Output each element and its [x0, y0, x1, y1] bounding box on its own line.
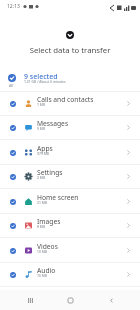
button[interactable]: Home screen — [0, 189, 140, 214]
staticText: 10 MB — [37, 249, 48, 254]
button[interactable]: Settings — [0, 164, 140, 189]
button[interactable]: Images — [0, 213, 140, 238]
button[interactable]: Back — [100, 290, 122, 310]
staticText: Calls and contacts — [37, 95, 94, 104]
staticText: 1.21 GB / About 4 minutes — [24, 79, 66, 84]
staticText: Home screen — [37, 193, 79, 202]
staticText: 12:13 — [7, 3, 20, 10]
staticText: Videos — [37, 242, 58, 251]
staticText: 979 MB — [37, 151, 49, 156]
staticText: Messages — [37, 119, 69, 128]
staticText: 2 MB — [37, 175, 46, 180]
staticText: Images — [37, 217, 61, 226]
staticText: 21 MB — [37, 200, 48, 205]
staticText: Select data to transfer — [0, 45, 140, 56]
button[interactable]: Audio — [0, 262, 140, 287]
button[interactable]: Calls and contacts — [0, 91, 140, 116]
staticText: 1 MB — [37, 102, 46, 107]
button[interactable]: Messages — [0, 115, 140, 140]
button[interactable]: All — [0, 71, 140, 91]
staticText: All — [9, 83, 14, 88]
staticText: 9 MB — [37, 126, 46, 131]
staticText: Settings — [37, 168, 63, 177]
staticText: 16 MB — [37, 273, 48, 278]
button[interactable]: Home — [59, 290, 81, 310]
staticText: Audio — [37, 266, 56, 275]
button[interactable]: Recents — [19, 290, 41, 310]
staticText: 8 MB — [37, 224, 46, 229]
staticText: Apps — [37, 144, 53, 153]
button[interactable]: Apps — [0, 140, 140, 165]
staticText: 9 selected — [24, 72, 58, 82]
button[interactable]: Videos — [0, 238, 140, 263]
